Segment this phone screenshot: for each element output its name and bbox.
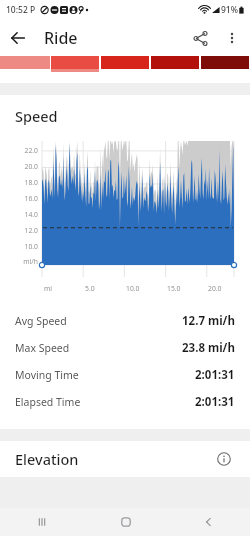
button[interactable]: Info [213,448,235,470]
staticText: 20.0 [0,162,38,171]
staticText: Elapsed Time [15,395,81,409]
button[interactable]: Avg Speed [0,307,250,334]
button[interactable]: Home [84,508,167,536]
staticText: Moving Time [15,368,79,382]
staticText: 10.0 [126,284,140,293]
staticText: 16.0 [0,194,38,203]
button[interactable]: Elapsed Time [0,388,250,415]
staticText: mi/h [0,257,38,266]
button[interactable]: More options [217,23,247,53]
button[interactable]: Back [0,20,36,56]
staticText: 22.0 [0,146,38,155]
staticText: 12.0 [0,226,38,235]
staticText: 18.0 [0,178,38,187]
staticText: Ride [44,27,78,49]
staticText: 2:01:31 [195,367,235,383]
button[interactable]: Back [167,508,250,536]
staticText: 91% [221,4,238,16]
staticText: Avg Speed [15,314,67,328]
staticText: 15.0 [167,284,181,293]
staticText: 23.8 mi/h [182,340,235,356]
staticText: 20.0 [208,284,222,293]
staticText: 5.0 [85,284,95,293]
staticText: 10.0 [0,242,38,251]
staticText: 10:52 P [6,4,36,16]
button[interactable]: Moving Time [0,361,250,388]
staticText: 14.0 [0,210,38,219]
button[interactable]: Recents [0,508,84,536]
staticText: mi [44,284,53,293]
staticText: Max Speed [15,341,70,355]
staticText: Elevation [15,449,79,469]
button[interactable]: Max Speed [0,334,250,361]
button[interactable]: Share [183,21,217,55]
staticText: Speed [15,106,58,126]
staticText: 2:01:31 [195,394,235,410]
staticText: 12.7 mi/h [182,313,235,329]
